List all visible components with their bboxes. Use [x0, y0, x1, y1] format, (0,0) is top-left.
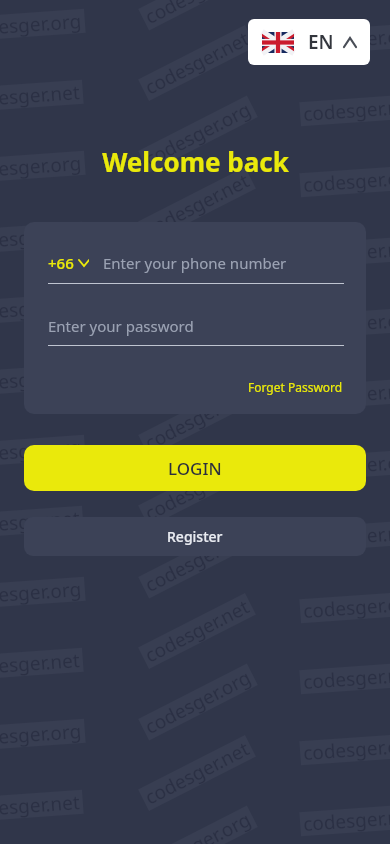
button[interactable]: LOGIN [24, 445, 366, 491]
staticText: Enter your phone number [103, 253, 287, 273]
staticText: Forget Password [248, 379, 343, 395]
staticText: +66 [48, 253, 74, 273]
button[interactable]: Enter your password [48, 313, 344, 339]
staticText: Welcome back [102, 144, 289, 179]
staticText: EN [308, 29, 334, 55]
staticText: Enter your password [48, 316, 194, 336]
staticText: LOGIN [168, 457, 222, 480]
button[interactable]: Enter your phone number [103, 251, 344, 275]
button[interactable]: Register [24, 517, 366, 556]
button[interactable]: Forget Password [248, 374, 366, 400]
button[interactable]: Select language English [248, 19, 370, 65]
staticText: Register [167, 527, 223, 546]
button[interactable]: +66 [48, 253, 89, 273]
